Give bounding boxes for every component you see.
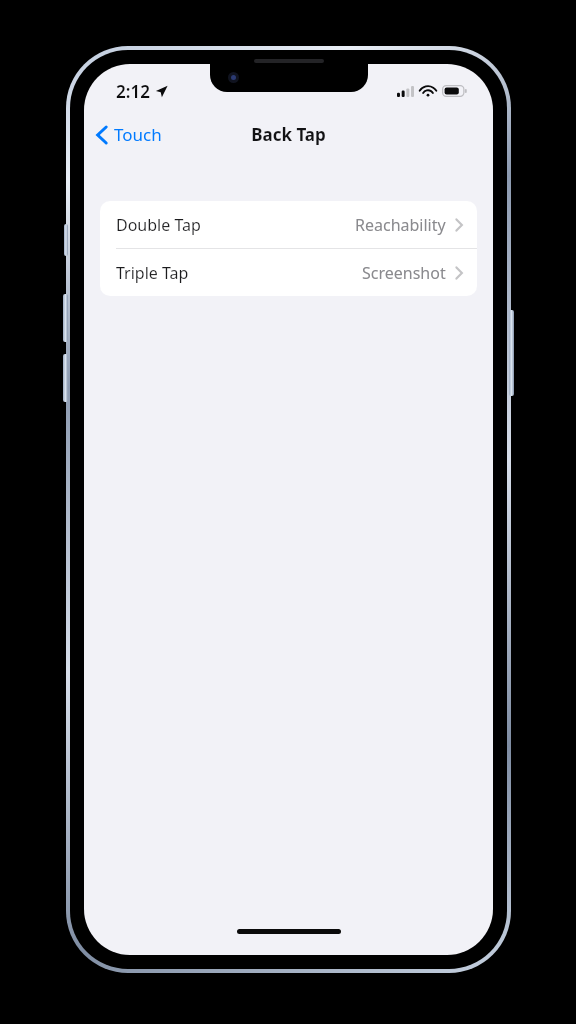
button[interactable]: Double Tap <box>100 201 477 248</box>
staticText: Back Tap <box>251 123 326 146</box>
other: Open Double Tap options <box>455 218 463 232</box>
staticText: Screenshot <box>362 262 446 284</box>
other: Open Triple Tap options <box>455 266 463 280</box>
button[interactable]: Triple Tap <box>100 249 477 296</box>
staticText: Reachability <box>355 214 446 236</box>
staticText: 2:12 <box>116 80 150 103</box>
staticText: Triple Tap <box>116 262 189 284</box>
staticText: Touch <box>114 123 162 146</box>
button[interactable]: Touch <box>84 117 172 152</box>
staticText: Double Tap <box>116 214 201 236</box>
